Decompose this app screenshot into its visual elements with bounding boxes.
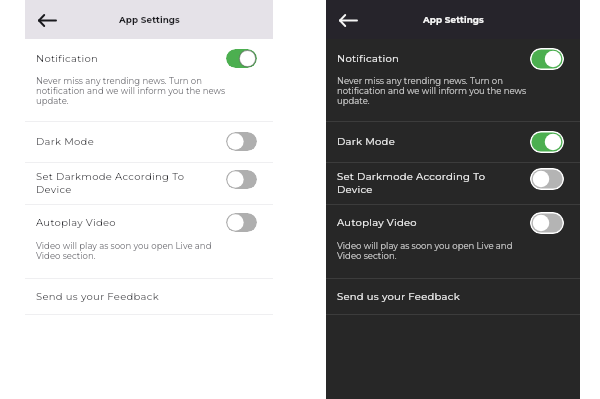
button[interactable]: Autoplay Video (326, 205, 580, 278)
button[interactable]: Switch on (530, 48, 564, 70)
button[interactable]: Switch off (226, 170, 257, 189)
button[interactable]: Switch on (530, 131, 564, 153)
staticText: App Settings (423, 14, 484, 25)
staticText: Dark Mode (337, 135, 396, 148)
button[interactable]: Autoplay Video (25, 205, 273, 278)
button[interactable]: Notification (25, 39, 273, 121)
staticText: Notification (337, 52, 400, 65)
staticText: Send us your Feedback (36, 290, 159, 303)
button[interactable]: Switch off (530, 212, 564, 234)
staticText: Never miss any trending news. Turn on no… (337, 76, 527, 106)
button[interactable]: Dark Mode (326, 122, 580, 162)
button[interactable]: Switch on (226, 49, 257, 68)
staticText: Send us your Feedback (337, 290, 460, 303)
button[interactable]: Set Darkmode According To Device (25, 163, 273, 204)
staticText: Video will play as soon you open Live an… (36, 241, 212, 261)
staticText: App Settings (119, 14, 180, 25)
staticText: Autoplay Video (337, 216, 417, 229)
staticText: Set Darkmode According To Device (337, 170, 486, 196)
button[interactable]: Send us your Feedback (25, 279, 273, 314)
button[interactable]: Switch off (530, 168, 564, 190)
staticText: Dark Mode (36, 135, 95, 148)
button[interactable]: Switch off (226, 213, 257, 232)
staticText: Autoplay Video (36, 216, 116, 229)
button[interactable]: Switch off (226, 132, 257, 151)
button[interactable]: Dark Mode (25, 122, 273, 162)
button[interactable]: Send us your Feedback (326, 279, 580, 314)
staticText: Notification (36, 52, 99, 65)
staticText: Video will play as soon you open Live an… (337, 241, 513, 261)
button[interactable]: Set Darkmode According To Device (326, 163, 580, 204)
staticText: Set Darkmode According To Device (36, 170, 185, 196)
button[interactable]: Back (34, 7, 60, 33)
button[interactable]: Back (335, 7, 361, 33)
staticText: Never miss any trending news. Turn on no… (36, 76, 226, 106)
button[interactable]: Notification (326, 39, 580, 121)
